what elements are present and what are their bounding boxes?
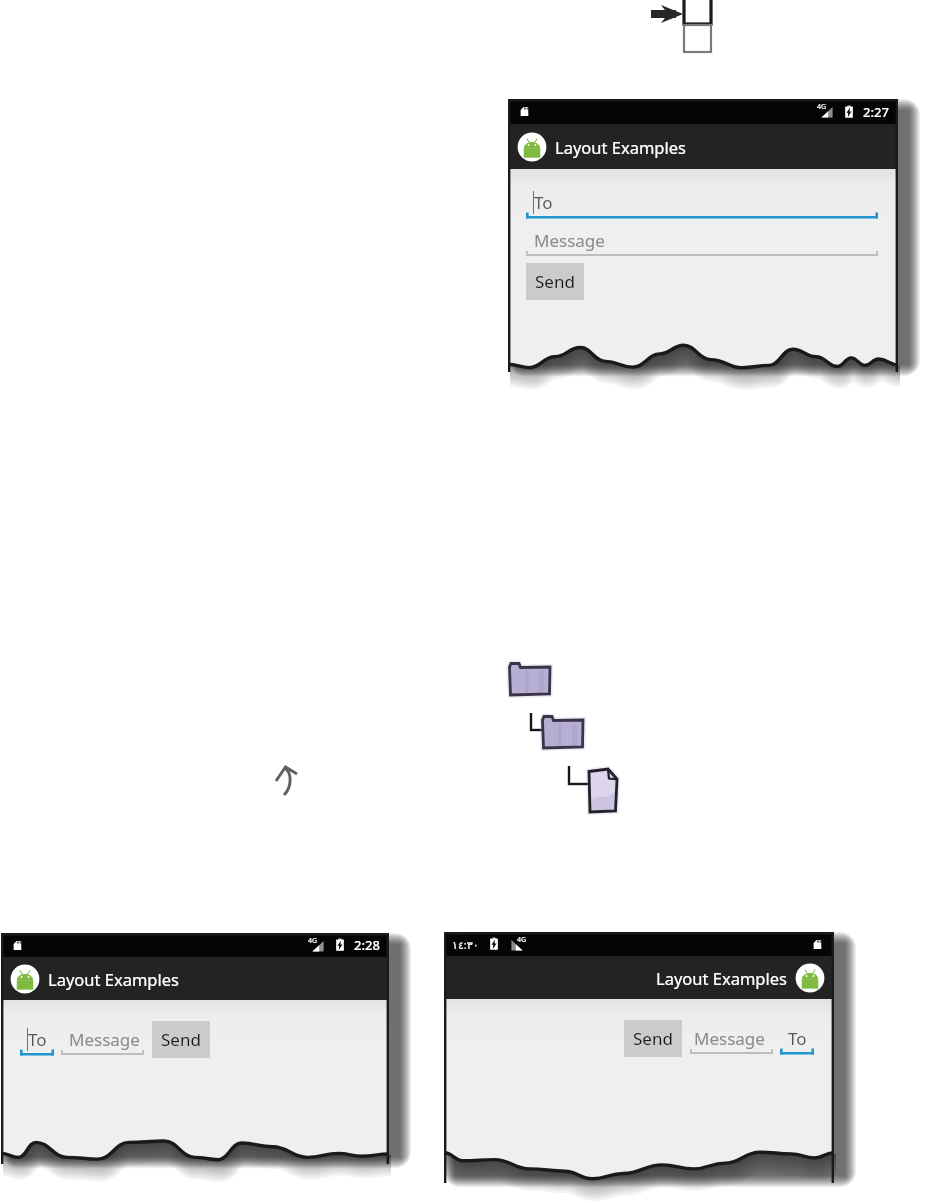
staticText: Layout Examples (555, 136, 686, 158)
staticText: ١٤:٣٠ (452, 937, 479, 952)
staticText: Send (535, 270, 575, 293)
staticText: To (28, 1028, 47, 1051)
button[interactable]: To (780, 1025, 814, 1057)
button[interactable]: Send (624, 1020, 682, 1057)
button[interactable]: Message (526, 227, 878, 259)
staticText: Layout Examples (656, 967, 787, 989)
staticText: 4G (517, 935, 527, 945)
staticText: Send (161, 1028, 201, 1051)
staticText: To (534, 191, 553, 214)
staticText: Send (633, 1027, 673, 1050)
staticText: To (788, 1027, 807, 1050)
staticText: Layout Examples (48, 968, 179, 990)
staticText: Message (534, 229, 605, 252)
button[interactable]: App icon (10, 964, 40, 994)
staticText: Message (694, 1027, 765, 1050)
button[interactable]: To (526, 189, 878, 221)
button[interactable]: App icon (795, 963, 825, 993)
button[interactable]: Send (152, 1021, 210, 1058)
staticText: Message (69, 1028, 140, 1051)
button[interactable]: Message (690, 1025, 773, 1057)
staticText: 2:27 (863, 103, 889, 121)
button[interactable]: App icon (517, 132, 547, 162)
staticText: 4G (817, 102, 827, 112)
button[interactable]: Message (61, 1026, 144, 1058)
staticText: 4G (308, 936, 318, 946)
staticText: 2:28 (354, 936, 380, 954)
button[interactable]: Send (526, 263, 584, 300)
button[interactable]: To (20, 1026, 54, 1058)
